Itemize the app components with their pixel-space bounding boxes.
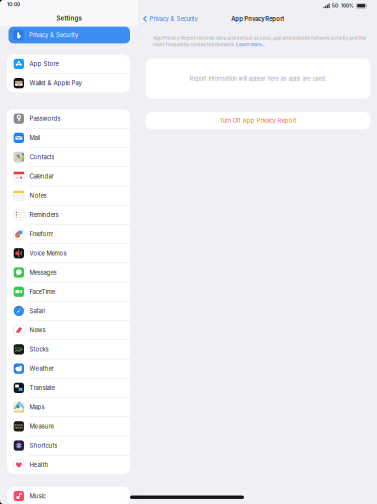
button[interactable]: News: [7, 321, 130, 339]
staticText: App Store: [29, 60, 58, 68]
staticText: Health: [29, 461, 48, 468]
staticText: App Privacy Report: [231, 15, 284, 22]
button[interactable]: Privacy & Security: [139, 13, 197, 24]
staticText: 100%: [341, 3, 354, 9]
button[interactable]: Measure: [7, 417, 130, 436]
staticText: Voice Memos: [29, 250, 66, 257]
button[interactable]: Translate: [7, 378, 130, 397]
staticText: Maps: [29, 403, 44, 411]
button[interactable]: Wallet & Apple Pay: [7, 74, 130, 92]
staticText: Mail: [29, 134, 39, 142]
staticText: Messages: [29, 269, 56, 276]
staticText: 10:00: [7, 2, 20, 7]
button[interactable]: Music: [7, 487, 130, 504]
button[interactable]: Freeform: [7, 225, 130, 243]
staticText: Turn Off App Privacy Report: [219, 117, 296, 124]
button[interactable]: App Store: [7, 55, 130, 73]
button[interactable]: Calendar: [7, 167, 130, 186]
staticText: Measure: [29, 423, 53, 430]
staticText: Shortcuts: [29, 442, 57, 449]
staticText: Passwords: [29, 115, 60, 122]
button[interactable]: Safari: [7, 302, 130, 320]
button[interactable]: Voice Memos: [7, 244, 130, 263]
button[interactable]: Health: [7, 455, 130, 474]
staticText: Report information will appear here as a…: [189, 75, 326, 82]
staticText: Learn more...: [236, 42, 265, 47]
button[interactable]: Mail: [7, 128, 130, 147]
button[interactable]: Turn Off App Privacy Report: [139, 112, 377, 129]
staticText: Safari: [29, 307, 44, 315]
button[interactable]: Learn more...: [236, 42, 265, 47]
staticText: Stocks: [29, 346, 48, 353]
staticText: Wallet & Apple Pay: [29, 79, 81, 87]
staticText: App Privacy Report records data and sens…: [153, 35, 366, 41]
button[interactable]: Messages: [7, 263, 130, 282]
button[interactable]: Weather: [7, 359, 130, 378]
staticText: Translate: [29, 384, 54, 391]
button[interactable]: Passwords: [7, 109, 130, 128]
staticText: News: [29, 327, 45, 334]
staticText: Privacy & Security: [149, 15, 197, 22]
staticText: Privacy & Security: [29, 31, 78, 39]
button[interactable]: Stocks: [7, 340, 130, 359]
button[interactable]: Reminders: [7, 205, 130, 224]
button[interactable]: Privacy & Security: [0, 27, 138, 43]
staticText: Music: [29, 492, 45, 500]
staticText: FaceTime: [29, 288, 54, 295]
staticText: Notes: [29, 192, 46, 199]
staticText: most frequently contacted domains.: [153, 42, 236, 47]
staticText: Weather: [29, 365, 53, 372]
button[interactable]: Notes: [7, 186, 130, 205]
staticText: Calendar: [29, 173, 53, 180]
button[interactable]: FaceTime: [7, 282, 130, 301]
staticText: Contacts: [29, 153, 54, 161]
staticText: 5G: [332, 3, 339, 9]
button[interactable]: Maps: [7, 398, 130, 416]
staticText: Freeform: [29, 230, 53, 238]
button[interactable]: Shortcuts: [7, 436, 130, 455]
button[interactable]: Contacts: [7, 148, 130, 166]
staticText: Settings: [56, 15, 81, 22]
staticText: Reminders: [29, 211, 58, 218]
